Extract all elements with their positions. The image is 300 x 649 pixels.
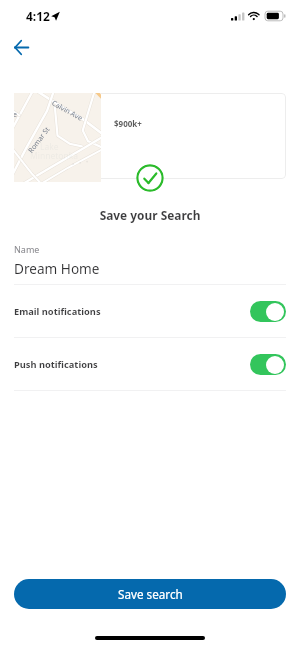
button[interactable]: Save search: [14, 579, 286, 609]
staticText: e: [14, 110, 17, 120]
button[interactable]: Back: [8, 34, 34, 60]
staticText: Name: [14, 243, 40, 255]
staticText: Minnetonka: [30, 150, 78, 162]
staticText: Email notifications: [14, 305, 250, 318]
button[interactable]: $900k+: [14, 93, 286, 179]
staticText: $900k+: [114, 118, 142, 129]
button[interactable]: Email notifications: [14, 285, 286, 337]
staticText: Dream Home: [14, 259, 100, 278]
staticText: Calvin Ave: [50, 98, 84, 124]
button[interactable]: Toggle Email notifications: [250, 301, 286, 322]
staticText: Push notifications: [14, 358, 250, 371]
staticText: Romar St: [26, 125, 53, 155]
staticText: 4:12: [26, 8, 50, 24]
button[interactable]: Toggle Push notifications: [250, 354, 286, 375]
staticText: Lake: [40, 141, 59, 153]
button[interactable]: Push notifications: [14, 338, 286, 390]
staticText: Save your Search: [0, 207, 300, 223]
staticText: Save search: [118, 586, 183, 602]
